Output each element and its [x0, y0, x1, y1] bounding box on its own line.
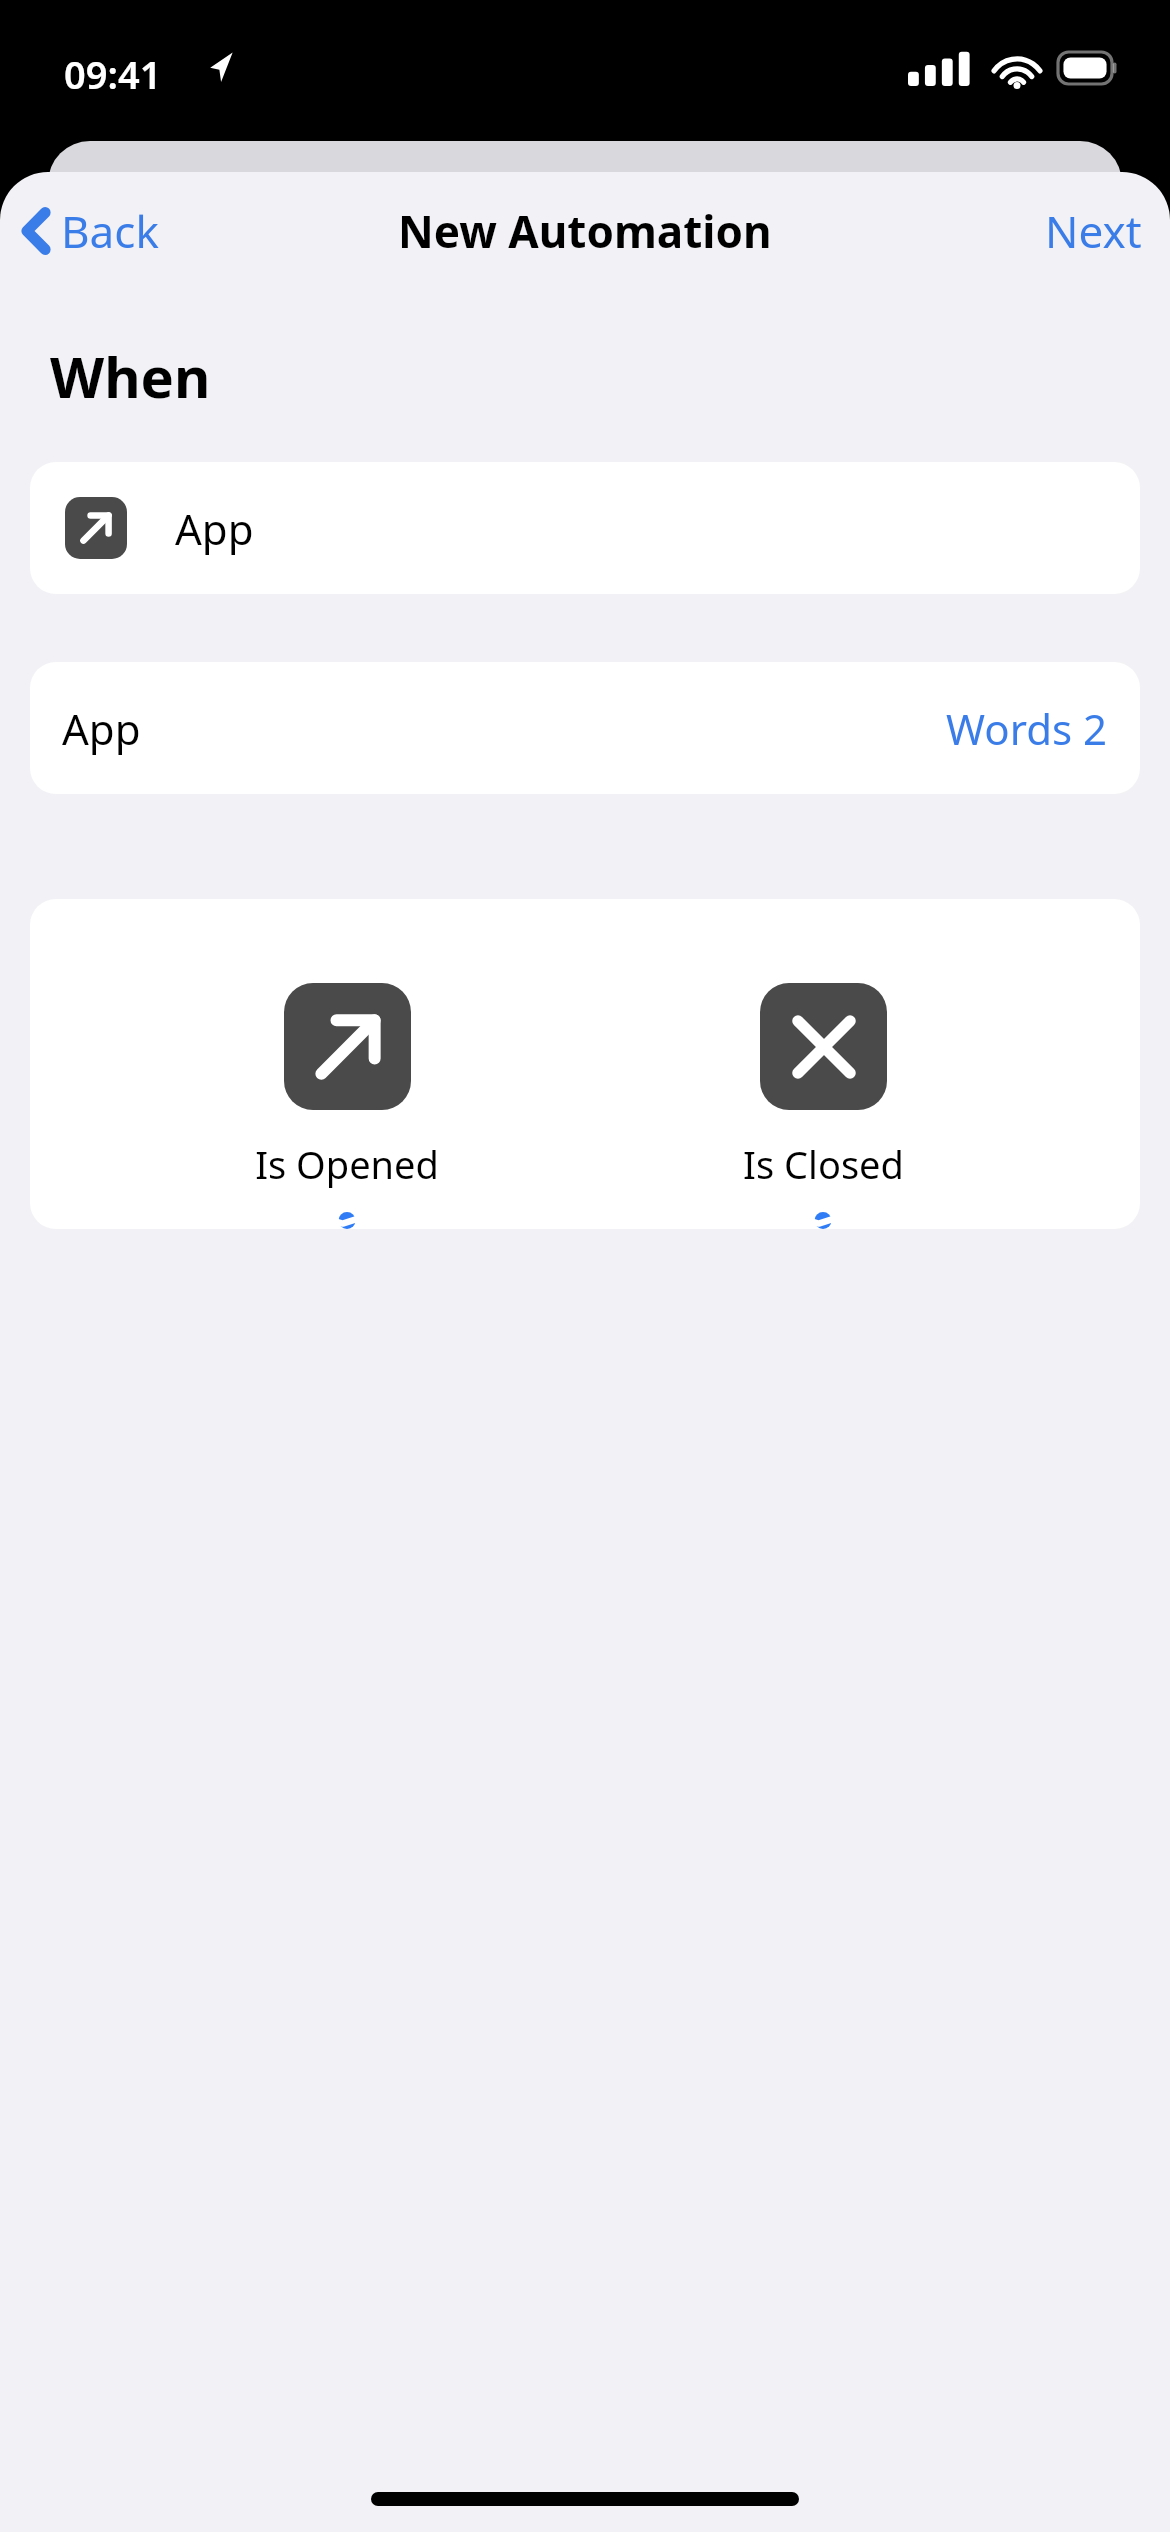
staticText: App: [175, 500, 254, 557]
button[interactable]: Back: [18, 191, 165, 271]
button[interactable]: App: [30, 462, 1140, 594]
button[interactable]: App: [30, 662, 1140, 794]
staticText: App: [62, 700, 141, 757]
staticText: 09:41: [64, 48, 162, 100]
staticText: Next: [1045, 201, 1142, 261]
button[interactable]: Is Opened: [187, 899, 507, 1229]
staticText: Is Opened: [255, 1138, 439, 1190]
staticText: Back: [61, 201, 159, 261]
staticText: New Automation: [398, 201, 772, 261]
button[interactable]: Next: [1037, 191, 1150, 271]
staticText: Is Closed: [743, 1138, 904, 1190]
staticText: Words 2: [946, 700, 1108, 757]
staticText: When: [50, 338, 211, 414]
button[interactable]: Is Closed: [663, 899, 983, 1229]
